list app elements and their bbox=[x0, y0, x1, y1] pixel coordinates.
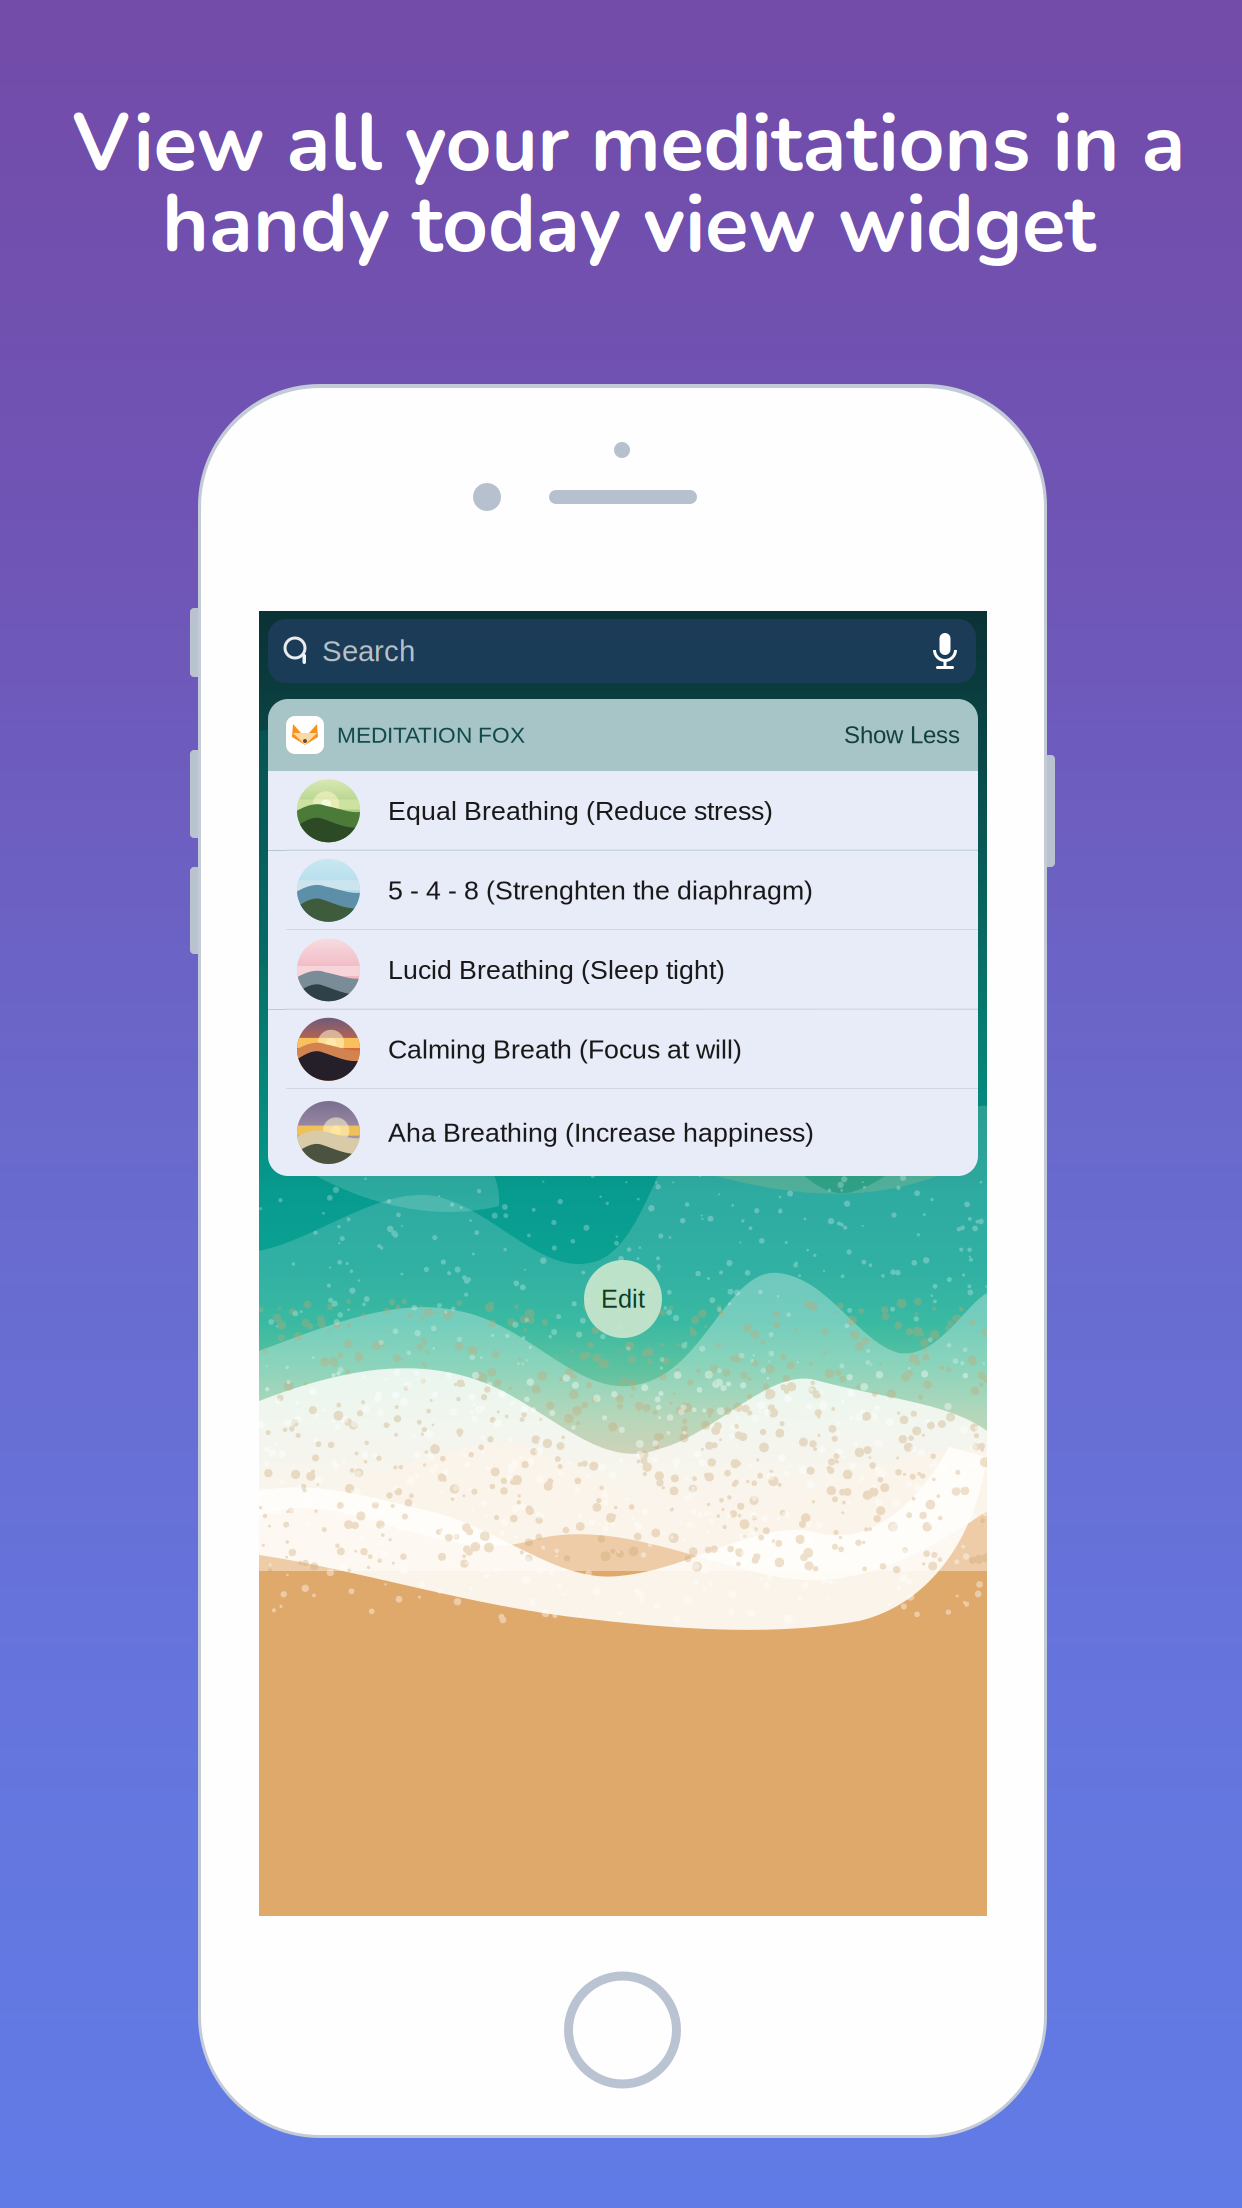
button[interactable]: Search bbox=[268, 619, 976, 683]
staticText: View all your meditations in a bbox=[72, 89, 1185, 198]
button[interactable]: Edit bbox=[584, 1260, 662, 1338]
staticText: handy today view widget bbox=[162, 170, 1096, 279]
button[interactable]: Show Less bbox=[844, 722, 978, 748]
button[interactable]: Aha Breathing (Increase happiness) bbox=[268, 1089, 978, 1176]
staticText: Edit bbox=[601, 1285, 645, 1313]
staticText: Aha Breathing (Increase happiness) bbox=[388, 1118, 814, 1147]
staticText: Search bbox=[322, 635, 415, 667]
staticText: MEDITATION FOX bbox=[337, 722, 525, 748]
staticText: Show Less bbox=[844, 722, 960, 748]
button[interactable]: 5 - 4 - 8 (Strenghten the diaphragm) bbox=[268, 850, 978, 930]
button[interactable]: Equal Breathing (Reduce stress) bbox=[268, 771, 978, 850]
button[interactable]: Calming Breath (Focus at will) bbox=[268, 1009, 978, 1089]
button[interactable]: Lucid Breathing (Sleep tight) bbox=[268, 930, 978, 1009]
staticText: Calming Breath (Focus at will) bbox=[388, 1034, 742, 1064]
staticText: 5 - 4 - 8 (Strenghten the diaphragm) bbox=[388, 875, 813, 905]
staticText: Lucid Breathing (Sleep tight) bbox=[388, 955, 725, 985]
staticText: Equal Breathing (Reduce stress) bbox=[388, 796, 773, 826]
